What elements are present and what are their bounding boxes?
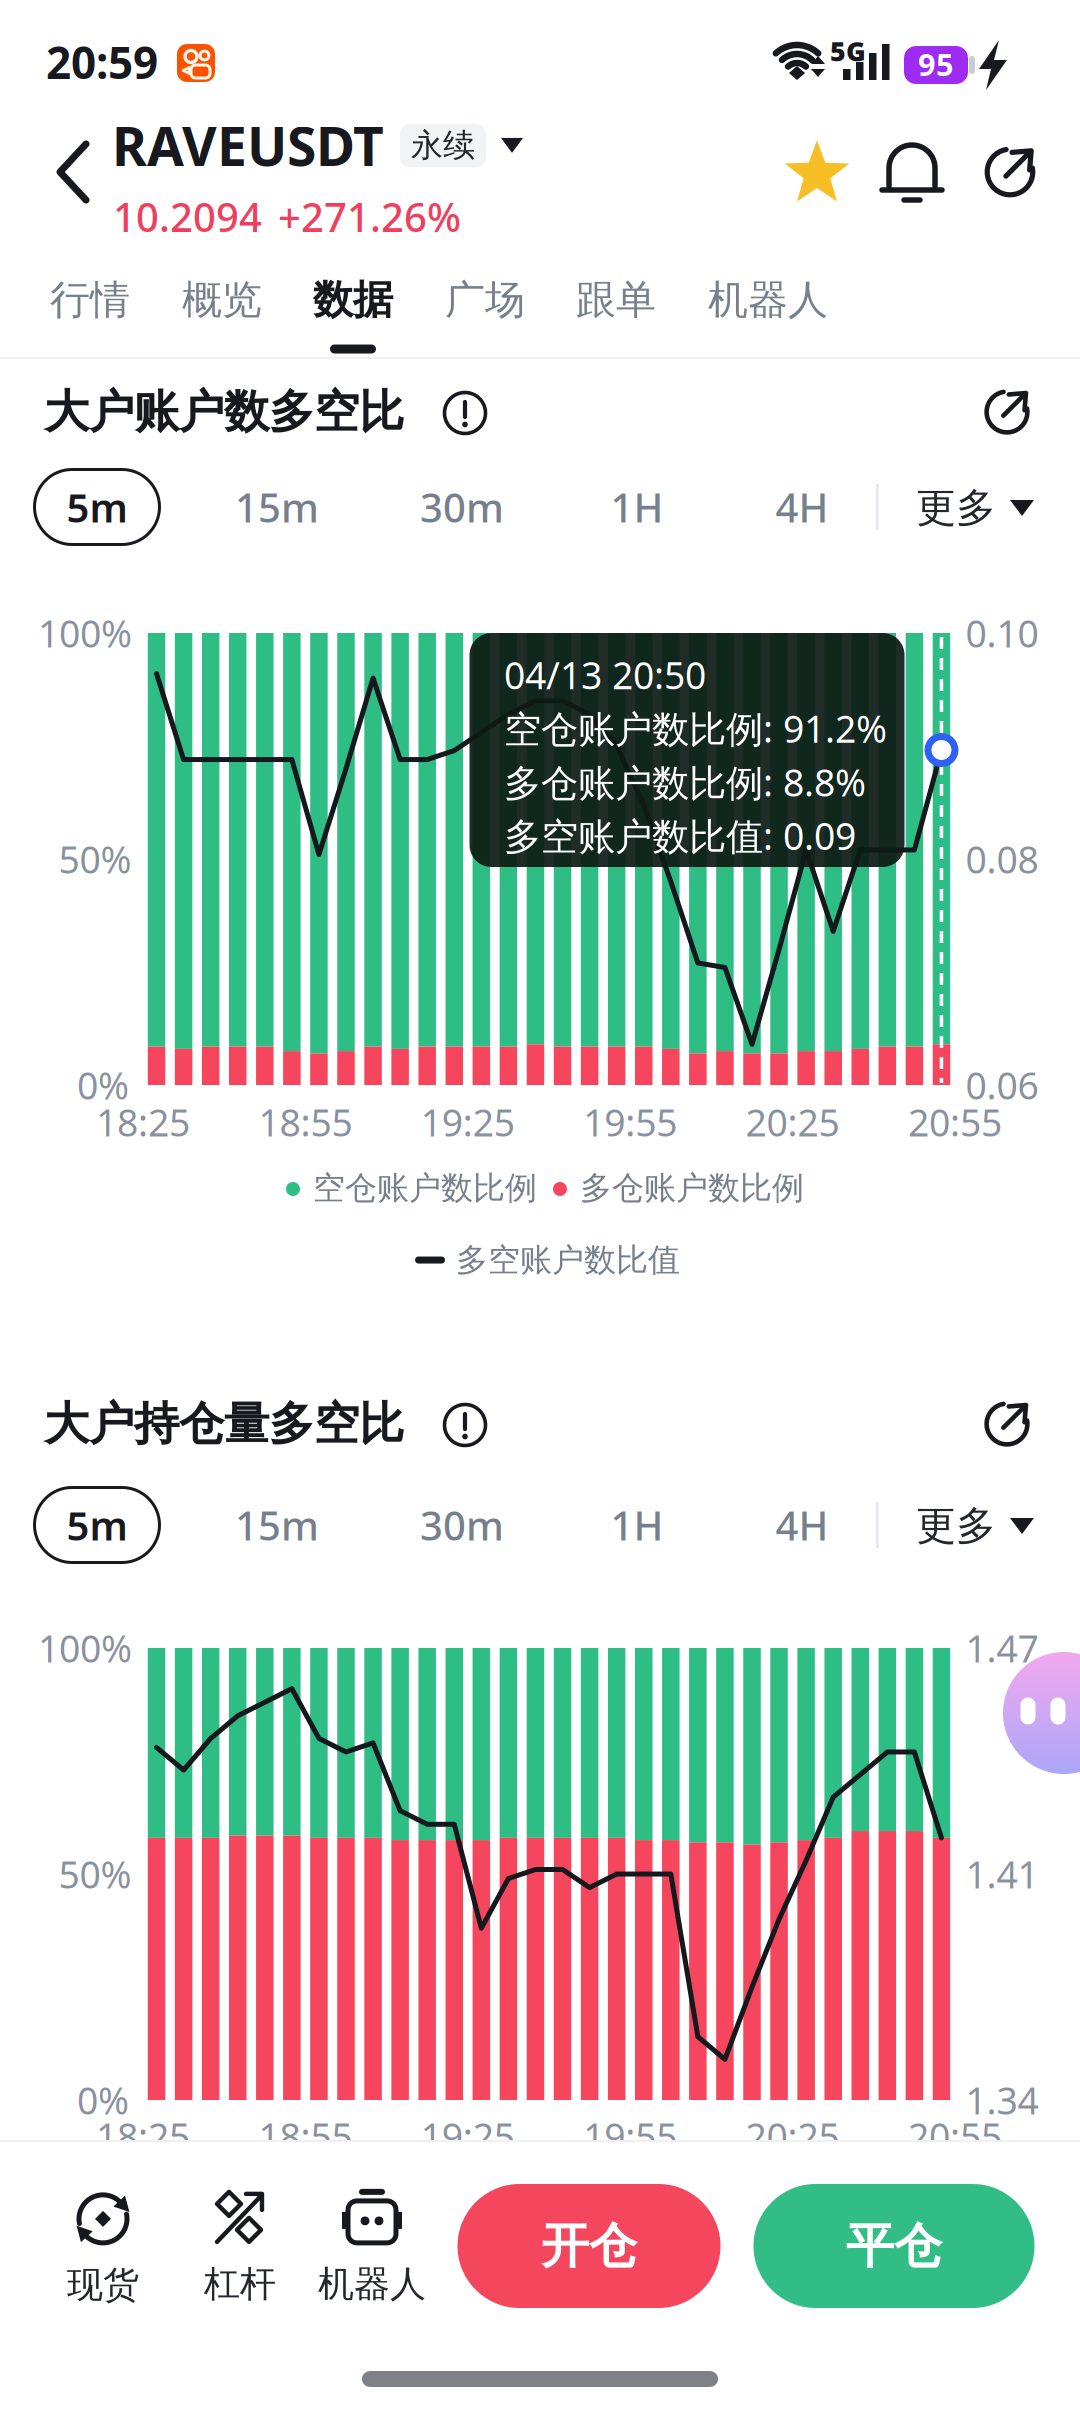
staticText: 20:59: [46, 33, 158, 91]
staticText: 1.41: [965, 1849, 1038, 1899]
staticText: 04/13 20:50: [504, 650, 706, 700]
staticText: 20:55: [908, 2111, 1002, 2161]
staticText: 概览: [182, 275, 262, 324]
staticText: 空仓账户数比例: [313, 1168, 537, 1208]
staticText: +271.26%: [278, 190, 461, 243]
button[interactable]: [982, 387, 1032, 437]
staticText: 多仓账户数比例: 8.8%: [504, 757, 866, 807]
staticText: 0%: [77, 1060, 129, 1110]
button[interactable]: 永续: [400, 123, 523, 167]
button[interactable]: 广场: [445, 275, 525, 324]
staticText: 100%: [38, 608, 132, 658]
button[interactable]: 机器人: [708, 275, 828, 324]
button[interactable]: 15m: [235, 480, 319, 533]
staticText: 杠杆: [204, 2262, 276, 2306]
staticText: 18:55: [258, 1097, 352, 1147]
staticText: 平仓: [846, 2216, 942, 2275]
button[interactable]: 开仓: [457, 2184, 720, 2308]
button[interactable]: 更多: [916, 483, 1034, 532]
button[interactable]: 30m: [420, 480, 504, 533]
staticText: 多空账户数比值: 0.09: [504, 811, 856, 860]
button[interactable]: 更多: [916, 1501, 1034, 1550]
staticText: 4H: [775, 480, 828, 533]
button[interactable]: [880, 140, 944, 204]
button[interactable]: 15m: [235, 1498, 319, 1551]
button[interactable]: [982, 1399, 1032, 1449]
staticText: 19:25: [421, 1097, 515, 1147]
button[interactable]: 30m: [420, 1498, 504, 1551]
staticText: 1H: [610, 480, 663, 533]
staticText: 50%: [58, 834, 131, 884]
staticText: 5m: [66, 480, 127, 533]
button[interactable]: [982, 144, 1038, 200]
button[interactable]: [442, 390, 488, 436]
button[interactable]: 数据: [313, 275, 393, 324]
staticText: 19:55: [583, 2111, 677, 2161]
staticText: 1H: [610, 1498, 663, 1551]
button[interactable]: 5m: [34, 1487, 159, 1562]
staticText: 永续: [411, 126, 475, 165]
button[interactable]: [1003, 1652, 1080, 1774]
staticText: 18:25: [96, 2111, 190, 2161]
button[interactable]: [56, 140, 90, 204]
button[interactable]: 5m: [34, 469, 159, 544]
staticText: 15m: [235, 1498, 319, 1551]
staticText: 20:25: [746, 1097, 840, 1147]
button[interactable]: [783, 138, 851, 206]
staticText: 4H: [775, 1498, 828, 1551]
staticText: 95: [918, 44, 954, 84]
button[interactable]: 4H: [775, 1498, 828, 1551]
staticText: 19:55: [583, 1097, 677, 1147]
staticText: 现货: [67, 2263, 139, 2307]
button[interactable]: 跟单: [576, 275, 656, 324]
staticText: 10.2094: [113, 190, 262, 243]
staticText: 30m: [420, 1498, 504, 1551]
staticText: 19:25: [421, 2111, 515, 2161]
staticText: 开仓: [541, 2216, 637, 2275]
staticText: 广场: [445, 275, 525, 324]
staticText: 机器人: [708, 275, 828, 324]
staticText: 机器人: [318, 2262, 426, 2306]
staticText: 更多: [916, 1501, 996, 1550]
button[interactable]: 机器人: [318, 2190, 426, 2306]
staticText: 0.06: [965, 1060, 1038, 1110]
staticText: 100%: [38, 1623, 132, 1673]
staticText: 15m: [235, 480, 319, 533]
button[interactable]: [442, 1402, 488, 1448]
staticText: 0.10: [965, 608, 1038, 658]
staticText: 0%: [77, 2075, 129, 2125]
staticText: 大户持仓量多空比: [44, 1396, 404, 1452]
staticText: 空仓账户数比例: 91.2%: [504, 704, 887, 753]
button[interactable]: 1H: [610, 1498, 663, 1551]
button[interactable]: 杠杆: [204, 2190, 276, 2306]
staticText: 0.08: [965, 834, 1038, 884]
staticText: 1.34: [965, 2075, 1038, 2125]
staticText: 30m: [420, 480, 504, 533]
button[interactable]: 1H: [610, 480, 663, 533]
staticText: 5m: [66, 1498, 127, 1551]
staticText: 跟单: [576, 275, 656, 324]
staticText: 50%: [58, 1849, 131, 1899]
staticText: 20:25: [746, 2111, 840, 2161]
staticText: 多空账户数比值: [456, 1240, 680, 1280]
staticText: 18:25: [96, 1097, 190, 1147]
staticText: 5G: [830, 33, 866, 69]
button[interactable]: 4H: [775, 480, 828, 533]
staticText: 行情: [50, 275, 130, 324]
button[interactable]: 概览: [182, 275, 262, 324]
staticText: 20:55: [908, 1097, 1002, 1147]
staticText: 数据: [313, 275, 393, 324]
staticText: 1.47: [965, 1623, 1038, 1673]
button[interactable]: 现货: [67, 2189, 139, 2307]
staticText: 18:55: [258, 2111, 352, 2161]
staticText: 多仓账户数比例: [580, 1168, 804, 1208]
staticText: 更多: [916, 483, 996, 532]
button[interactable]: 平仓: [753, 2184, 1034, 2308]
staticText: RAVEUSDT: [112, 110, 384, 181]
staticText: 大户账户数多空比: [44, 384, 404, 440]
button[interactable]: 行情: [50, 275, 130, 324]
